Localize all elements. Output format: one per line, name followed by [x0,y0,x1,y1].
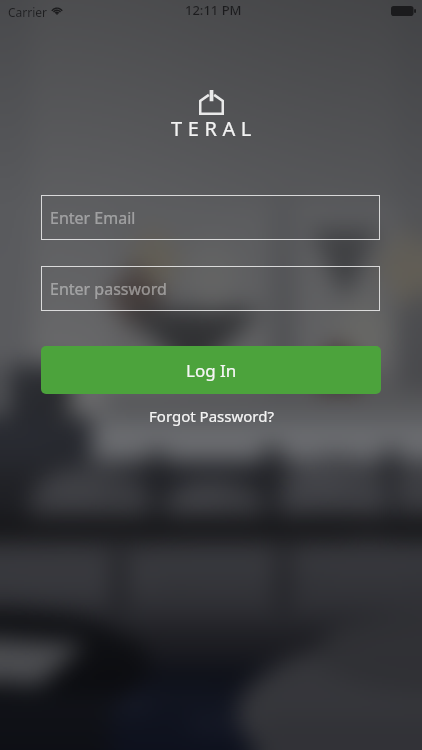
button[interactable]: Enter Email [41,195,380,240]
staticText: Carrier [8,4,48,20]
staticText: Log In [186,359,237,382]
button[interactable]: Forgot Password? [143,404,280,428]
button[interactable]: Enter password [41,266,380,311]
other: Teral logo [199,90,224,115]
staticText: 12:11 PM [185,1,242,19]
staticText: Forgot Password? [149,406,274,426]
staticText: Enter Email [50,207,136,229]
button[interactable]: Log In [41,346,381,394]
staticText: Enter password [50,278,167,300]
staticText: TERAL [171,115,257,142]
